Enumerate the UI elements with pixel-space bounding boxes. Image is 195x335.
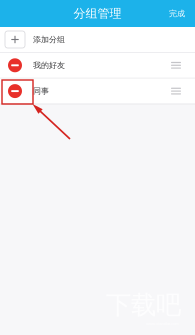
button[interactable]: 添加分组: [0, 27, 195, 52]
button[interactable]: 删除 我的好友: [3, 53, 27, 77]
button[interactable]: 重新排序 同事: [166, 83, 186, 99]
button[interactable]: 重新排序 我的好友: [166, 57, 186, 73]
staticText: 分组管理: [73, 6, 121, 21]
staticText: 我的好友: [33, 60, 65, 70]
staticText: 同事: [33, 86, 49, 96]
button[interactable]: 完成: [159, 3, 195, 24]
staticText: 添加分组: [33, 35, 65, 44]
staticText: 完成: [169, 9, 185, 18]
button[interactable]: 删除 同事: [3, 79, 27, 103]
